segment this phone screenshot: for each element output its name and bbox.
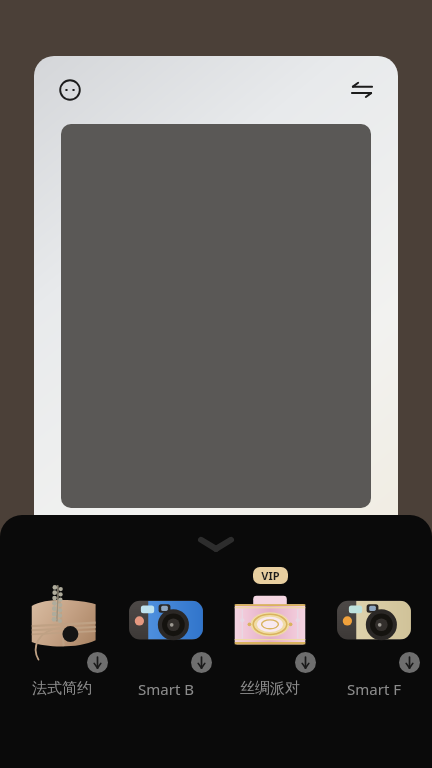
button[interactable]: Download Smart F <box>399 652 420 673</box>
button[interactable]: Download 法式简约 <box>87 652 108 673</box>
button[interactable]: Aspect ratio <box>50 70 90 110</box>
button[interactable]: Download 丝绸派对 <box>295 652 316 673</box>
button[interactable]: Download Smart B <box>114 567 218 717</box>
staticText: VIP <box>261 568 280 583</box>
button[interactable]: Swap <box>342 70 382 110</box>
button[interactable]: Download 法式简约 <box>10 567 114 717</box>
staticText: Smart F <box>347 679 401 699</box>
staticText: Smart B <box>138 679 194 699</box>
button[interactable]: Download Smart B <box>191 652 212 673</box>
button[interactable]: VIP <box>218 567 322 717</box>
staticText: 法式简约 <box>32 679 92 698</box>
staticText: 丝绸派对 <box>240 679 300 698</box>
button[interactable]: Collapse <box>188 531 244 557</box>
button[interactable]: Download Smart F <box>322 567 426 717</box>
